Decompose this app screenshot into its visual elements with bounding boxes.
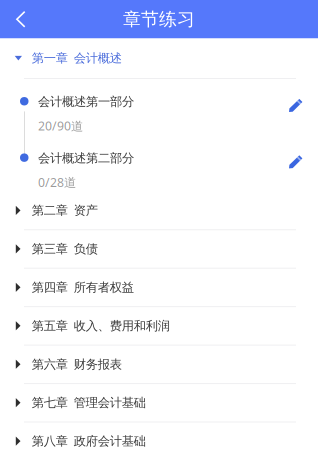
staticText: 章节练习 [123,8,195,30]
staticText: 第五章 [32,318,68,334]
button[interactable]: 第五章 [0,307,318,345]
staticText: 第二章 [32,203,68,218]
button[interactable]: 第三章 [0,230,318,268]
staticText: 会计概述第一部分 [38,94,134,109]
staticText: 第一章 [32,50,68,66]
staticText: 第六章 [32,357,68,372]
staticText: 第七章 [32,395,68,410]
staticText: 财务报表 [74,357,122,372]
staticText: 第八章 [32,433,68,449]
staticText: 第四章 [32,280,68,295]
button[interactable]: 第二章 [0,192,318,229]
staticText: 20/90道 [38,117,83,134]
button[interactable]: 会计概述第二部分 [0,135,318,192]
staticText: 所有者权益 [74,280,134,295]
button[interactable]: 第四章 [0,269,318,306]
staticText: 资产 [74,203,98,218]
button[interactable]: 第一章 [0,38,318,78]
staticText: 收入、费用和利润 [74,318,170,334]
staticText: 第三章 [32,241,68,257]
staticText: 会计概述 [74,50,122,66]
button[interactable]: Back [0,0,40,38]
staticText: 政府会计基础 [74,433,146,449]
staticText: 0/28道 [38,174,76,191]
staticText: 会计概述第二部分 [38,150,134,166]
button[interactable]: 会计概述第一部分 [0,79,318,135]
button[interactable]: 第六章 [0,346,318,383]
staticText: 管理会计基础 [74,395,146,410]
button[interactable]: 第七章 [0,384,318,421]
staticText: 负债 [74,241,98,257]
button[interactable]: 第八章 [0,422,318,460]
